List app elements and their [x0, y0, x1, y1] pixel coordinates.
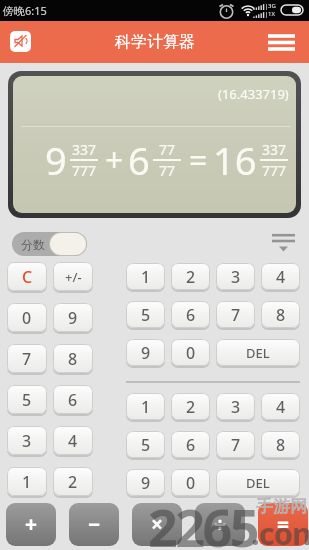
staticText: 1X	[268, 10, 275, 18]
button[interactable]: C	[7, 262, 47, 291]
staticText: 0	[186, 342, 196, 364]
staticText: 7	[22, 348, 32, 370]
button[interactable]: 0	[171, 339, 210, 366]
button[interactable]: 4	[261, 393, 300, 420]
button[interactable]: 1	[126, 393, 165, 420]
staticText: 4	[276, 266, 286, 288]
button[interactable]: 8	[261, 301, 300, 328]
staticText: 1	[22, 471, 32, 493]
button[interactable]: =	[258, 503, 308, 546]
staticText: 6	[68, 389, 78, 411]
staticText: 3	[231, 266, 241, 288]
button[interactable]: −	[69, 503, 119, 546]
staticText: 5	[141, 434, 151, 456]
button[interactable]: DEL	[216, 339, 300, 366]
staticText: 6	[128, 134, 150, 186]
button[interactable]: ÷	[195, 503, 245, 546]
staticText: +	[25, 510, 38, 539]
staticText: 337	[262, 140, 287, 159]
staticText: 4	[276, 396, 286, 418]
staticText: 6	[186, 434, 196, 456]
button[interactable]: 3	[216, 393, 255, 420]
staticText: (16.433719)	[218, 85, 289, 103]
staticText: 1	[141, 396, 151, 418]
staticText: +	[105, 138, 124, 182]
staticText: =	[189, 138, 208, 182]
staticText: 2	[186, 266, 196, 288]
staticText: 7	[231, 304, 241, 326]
button[interactable]: DEL	[216, 469, 300, 496]
button[interactable]: 5	[126, 431, 165, 458]
button[interactable]: 4	[261, 263, 300, 290]
staticText: 分数	[21, 237, 45, 252]
staticText: 2	[186, 396, 196, 418]
button[interactable]: 8	[53, 344, 93, 373]
staticText: 8	[276, 434, 286, 456]
button[interactable]	[268, 34, 295, 51]
staticText: 科学计算器	[115, 32, 195, 52]
button[interactable]: 9	[126, 339, 165, 366]
button[interactable]: 7	[7, 344, 47, 373]
button[interactable]: 3	[216, 263, 255, 290]
staticText: 3	[22, 430, 32, 452]
staticText: 0	[22, 307, 32, 329]
staticText: 7	[231, 434, 241, 456]
staticText: 9	[141, 342, 151, 364]
button[interactable]: 6	[171, 301, 210, 328]
staticText: 4	[68, 430, 78, 452]
button[interactable]: 6	[53, 385, 93, 414]
staticText: 337	[72, 140, 97, 159]
staticText: 777	[262, 161, 287, 180]
staticText: .com	[251, 512, 309, 550]
staticText: 6	[186, 304, 196, 326]
button[interactable]: +/-	[53, 262, 93, 291]
staticText: 5	[141, 304, 151, 326]
button[interactable]: 6	[171, 431, 210, 458]
staticText: 3	[231, 396, 241, 418]
staticText: 手游网	[256, 496, 307, 517]
button[interactable]: 9	[53, 303, 93, 332]
staticText: 8	[276, 304, 286, 326]
staticText: C	[22, 266, 33, 288]
staticText: 9	[68, 307, 78, 329]
button[interactable]: 0	[7, 303, 47, 332]
staticText: ÷	[214, 510, 227, 539]
staticText: 77	[159, 161, 176, 180]
staticText: 傍晚6:15	[3, 3, 47, 18]
button[interactable]: 4	[53, 426, 93, 455]
staticText: 3G	[268, 2, 276, 10]
staticText: −	[88, 510, 101, 539]
button[interactable]: 7	[216, 301, 255, 328]
button[interactable]: 8	[261, 431, 300, 458]
staticText: 1	[141, 266, 151, 288]
staticText: 8	[68, 348, 78, 370]
button[interactable]: 7	[216, 431, 255, 458]
button[interactable]	[10, 31, 31, 52]
button[interactable]: 2	[171, 263, 210, 290]
button[interactable]: 2	[171, 393, 210, 420]
button[interactable]: 1	[126, 263, 165, 290]
button[interactable]: 5	[126, 301, 165, 328]
button[interactable]: 0	[171, 469, 210, 496]
staticText: 9	[141, 472, 151, 494]
staticText: 5	[22, 389, 32, 411]
button[interactable]: 分数	[12, 232, 87, 256]
staticText: 777	[72, 161, 97, 180]
button[interactable]: 5	[7, 385, 47, 414]
button[interactable]: 9	[126, 469, 165, 496]
button[interactable]: 2	[53, 467, 93, 496]
staticText: 2	[68, 471, 78, 493]
staticText: 16	[213, 134, 257, 186]
staticText: +/-	[65, 268, 82, 286]
staticText: 77	[159, 140, 176, 159]
button[interactable]: ×	[132, 503, 182, 546]
button[interactable]: +	[6, 503, 56, 546]
staticText: 2265	[148, 491, 257, 550]
staticText: =	[277, 510, 290, 539]
button[interactable]: 1	[7, 467, 47, 496]
staticText: DEL	[246, 474, 270, 492]
button[interactable]	[272, 234, 295, 254]
staticText: 9	[45, 134, 67, 186]
staticText: ×	[151, 510, 164, 539]
button[interactable]: 3	[7, 426, 47, 455]
